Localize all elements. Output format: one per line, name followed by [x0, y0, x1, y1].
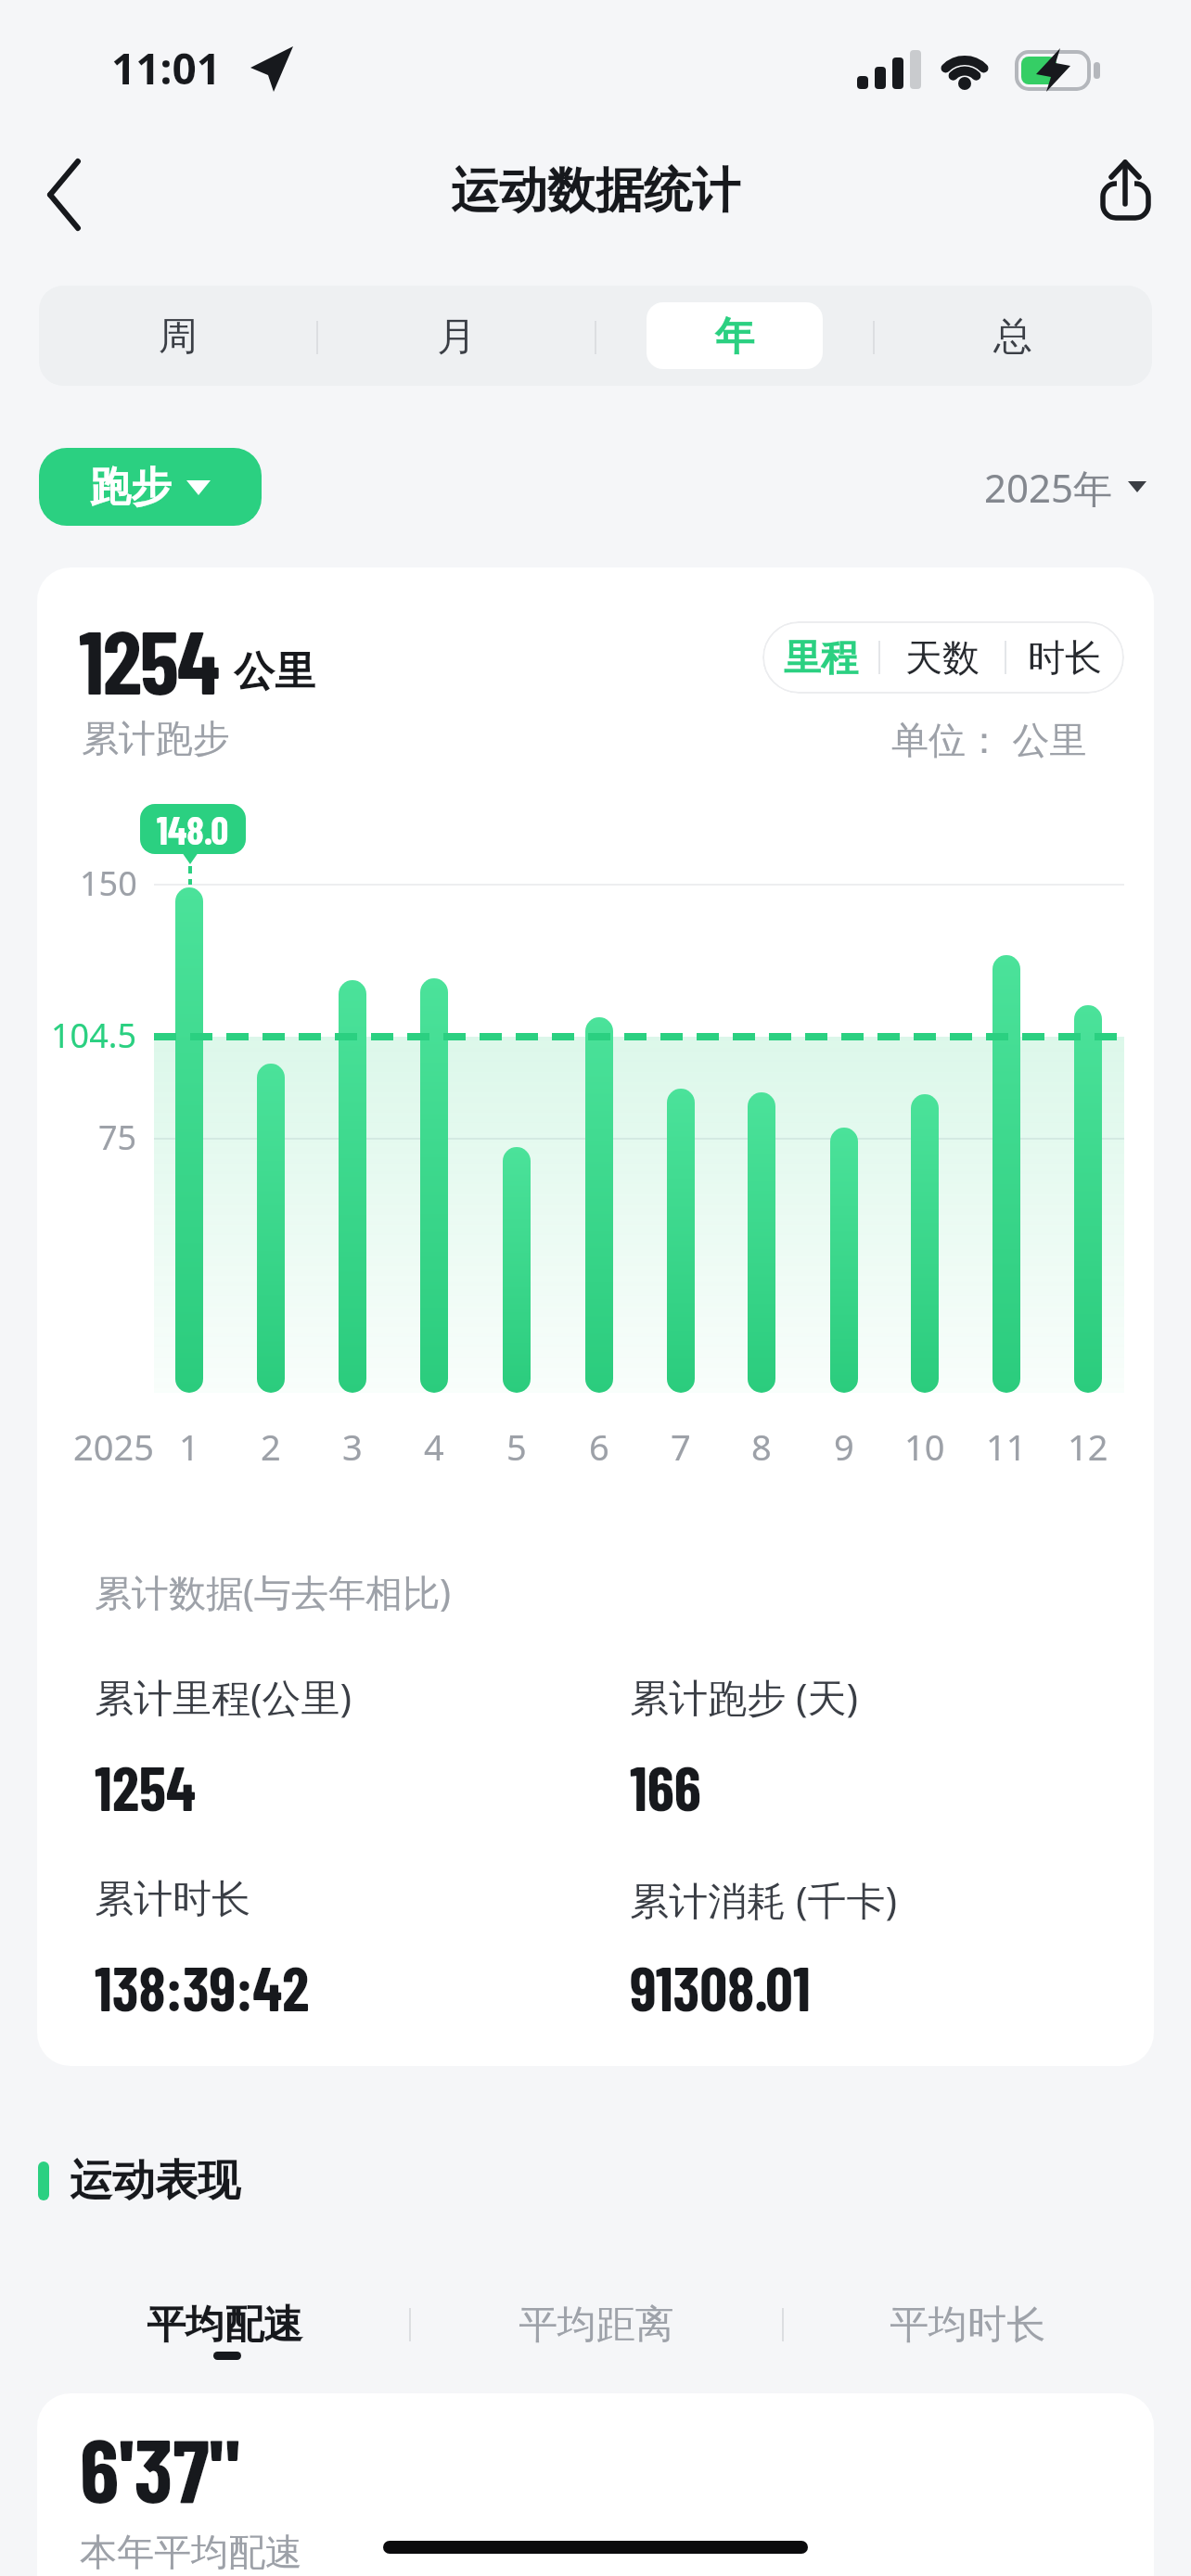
staticText: 周 [159, 312, 198, 362]
staticText: 时长 [1028, 634, 1102, 681]
button[interactable] [879, 621, 1005, 694]
staticText: 2 [261, 1422, 281, 1471]
staticText: 跑步 [90, 462, 172, 513]
staticText: 9 [834, 1422, 854, 1471]
staticText: 公里 [234, 646, 315, 697]
button[interactable]: 跑步 [39, 448, 262, 526]
staticText: 累计里程(公里) [95, 1670, 352, 1723]
staticText: 平均时长 [890, 2301, 1045, 2350]
button[interactable] [1095, 144, 1183, 232]
button[interactable] [1005, 621, 1124, 694]
staticText: 6 [589, 1422, 609, 1471]
staticText: 4 [424, 1422, 444, 1471]
staticText: 平均配速 [147, 2301, 302, 2350]
staticText: 138:39:42 [95, 1950, 310, 2023]
staticText: 天数 [905, 634, 980, 681]
staticText: 148.0 [157, 806, 229, 852]
button[interactable] [317, 286, 595, 386]
button[interactable] [39, 286, 317, 386]
staticText: 2025年 [984, 461, 1113, 514]
staticText: 12 [1068, 1422, 1108, 1471]
staticText: 11:01 [111, 39, 222, 97]
staticText: 3 [342, 1422, 363, 1471]
staticText: 年 [715, 312, 754, 362]
button[interactable] [595, 286, 874, 386]
staticText: 里程 [784, 634, 858, 681]
staticText: 累计跑步 [82, 715, 230, 761]
staticText: 1 [179, 1422, 199, 1471]
staticText: 104.5 [51, 1013, 137, 1058]
staticText: 2025 [73, 1422, 154, 1471]
staticText: 10 [904, 1422, 945, 1471]
staticText: 5 [506, 1422, 527, 1471]
button[interactable] [762, 621, 879, 694]
staticText: 本年平均配速 [80, 2529, 302, 2575]
button[interactable] [835, 2286, 1095, 2369]
staticText: 月 [437, 312, 476, 362]
button[interactable] [464, 2286, 724, 2369]
staticText: 累计时长 [95, 1875, 250, 1924]
staticText: 运动表现 [70, 2154, 240, 2208]
staticText: 11 [986, 1422, 1027, 1471]
staticText: 1254 [79, 606, 219, 712]
staticText: 累计数据(与去年相比) [95, 1566, 451, 1617]
button[interactable] [874, 286, 1152, 386]
staticText: 1254 [95, 1750, 196, 1823]
staticText: 150 [80, 861, 137, 906]
button[interactable] [28, 148, 111, 241]
button[interactable] [928, 450, 1152, 524]
staticText: 总 [993, 312, 1032, 362]
staticText: 累计跑步 (天) [630, 1670, 859, 1723]
staticText: 75 [98, 1115, 137, 1160]
staticText: 累计消耗 (千卡) [630, 1873, 898, 1926]
staticText: 8 [751, 1422, 772, 1471]
button[interactable] [111, 2286, 371, 2369]
staticText: 7 [671, 1422, 691, 1471]
staticText: 单位： 公里 [891, 713, 1087, 764]
staticText: 平均距离 [519, 2301, 674, 2350]
staticText: 6'37" [80, 2414, 240, 2520]
staticText: 91308.01 [630, 1950, 811, 2023]
staticText: 运动数据统计 [451, 160, 740, 222]
staticText: 166 [630, 1750, 701, 1823]
